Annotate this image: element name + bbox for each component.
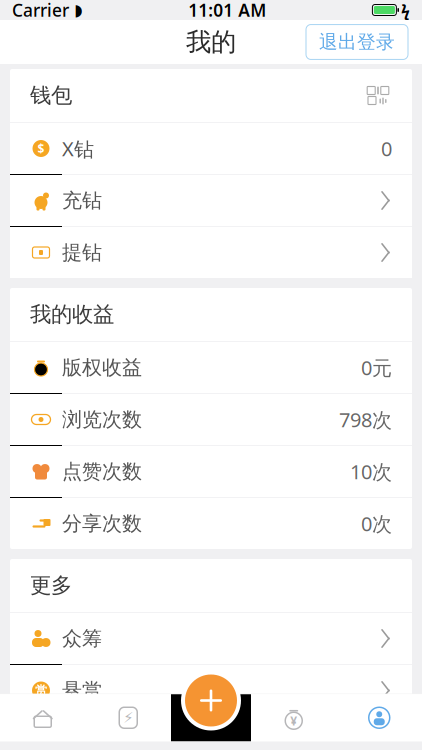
staticText: 充钻	[62, 188, 102, 213]
button[interactable]: 我的	[336, 694, 422, 741]
staticText: 钱包	[30, 82, 72, 109]
staticText: 0次	[361, 510, 392, 537]
staticText: 版权收益	[62, 355, 142, 380]
staticText: 提钻	[62, 240, 102, 265]
staticText: 浏览次数	[62, 407, 142, 432]
button[interactable]: 提钻	[10, 227, 412, 278]
staticText: Carrier	[12, 0, 69, 21]
button[interactable]: 动态	[85, 694, 171, 741]
staticText: 我的	[186, 26, 236, 57]
staticText: 0	[381, 135, 392, 162]
staticText: ¥	[290, 713, 297, 729]
button[interactable]: 首页	[0, 694, 85, 741]
staticText: 798次	[339, 406, 392, 433]
button[interactable]: 发布	[181, 670, 241, 730]
staticText: ◗	[74, 1, 82, 19]
staticText: $	[37, 140, 44, 156]
staticText: 众筹	[62, 626, 102, 651]
staticText: 赏	[35, 683, 47, 698]
staticText: ϟ	[401, 0, 410, 21]
staticText: X钻	[62, 135, 94, 162]
staticText: 更多	[30, 572, 72, 599]
staticText: 我的收益	[30, 301, 114, 328]
staticText: 10次	[350, 458, 392, 485]
staticText: 点赞次数	[62, 459, 142, 484]
staticText: 0元	[361, 354, 392, 381]
staticText: 悬赏	[62, 678, 102, 703]
button[interactable]: 众筹	[10, 613, 412, 664]
button[interactable]: 收益	[251, 694, 336, 741]
button[interactable]: 赏	[10, 665, 412, 716]
button[interactable]: 扫一扫	[364, 81, 392, 109]
staticText: 退出登录	[319, 30, 395, 53]
button[interactable]: 退出登录	[306, 24, 408, 59]
staticText: 分享次数	[62, 511, 142, 536]
button[interactable]: 充钻	[10, 175, 412, 226]
staticText: ⚡︎	[123, 709, 133, 726]
staticText: 11:01 AM	[188, 0, 266, 21]
